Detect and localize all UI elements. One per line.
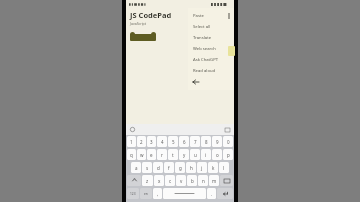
staticText: h xyxy=(190,165,193,171)
button[interactable]: e xyxy=(147,149,156,160)
button[interactable]: f xyxy=(164,162,174,173)
staticText: t xyxy=(172,152,174,158)
button[interactable]: c xyxy=(165,175,175,186)
staticText: 6 xyxy=(183,139,186,145)
button[interactable]: Select all xyxy=(188,21,234,32)
button[interactable]: 123 xyxy=(127,188,139,199)
button[interactable]: , xyxy=(153,188,162,199)
staticText: m xyxy=(212,178,217,184)
staticText: z xyxy=(146,178,149,184)
staticText: e xyxy=(150,152,153,158)
button[interactable]: w xyxy=(137,149,146,160)
staticText: g xyxy=(179,165,182,171)
staticText: a xyxy=(135,165,138,171)
button[interactable]: l xyxy=(219,162,229,173)
staticText: . xyxy=(211,191,213,197)
button[interactable]: Language xyxy=(140,188,152,199)
button[interactable]: Emoji xyxy=(129,126,136,133)
staticText: b xyxy=(191,178,194,184)
staticText: o xyxy=(216,152,219,158)
staticText: en xyxy=(144,192,148,196)
button[interactable]: d xyxy=(153,162,163,173)
button[interactable]: Keyboard settings xyxy=(224,126,231,133)
button[interactable]: 2 xyxy=(137,136,146,147)
button[interactable]: v xyxy=(176,175,186,186)
button[interactable]: 1 xyxy=(127,136,136,147)
button[interactable]: x xyxy=(154,175,164,186)
button[interactable]: a xyxy=(131,162,141,173)
staticText: l xyxy=(223,165,225,171)
button[interactable]: t xyxy=(168,149,178,160)
button[interactable]: s xyxy=(142,162,152,173)
staticText: u xyxy=(194,152,197,158)
staticText: y xyxy=(183,152,186,158)
button[interactable]: Space xyxy=(163,188,206,199)
button[interactable]: Selection handle xyxy=(228,46,235,56)
staticText: Ask ChatGPT xyxy=(193,57,219,63)
staticText: n xyxy=(202,178,205,184)
button[interactable]: h xyxy=(186,162,196,173)
button[interactable]: z xyxy=(142,175,153,186)
staticText: 9 xyxy=(216,139,219,145)
button[interactable]: 7 xyxy=(190,136,200,147)
staticText: 8 xyxy=(205,139,208,145)
staticText: Web search xyxy=(193,46,216,52)
button[interactable]: 0 xyxy=(223,136,233,147)
button[interactable]: 6 xyxy=(179,136,189,147)
button[interactable]: 9 xyxy=(212,136,222,147)
button[interactable]: 4 xyxy=(157,136,167,147)
staticText: 7 xyxy=(194,139,197,145)
button[interactable]: 8 xyxy=(201,136,211,147)
button[interactable]: Back xyxy=(188,76,234,88)
button[interactable]: q xyxy=(127,149,136,160)
staticText: JS CodePad xyxy=(130,10,172,20)
staticText: s xyxy=(146,165,149,171)
button[interactable]: j xyxy=(197,162,207,173)
staticText: 3 xyxy=(150,139,153,145)
button[interactable]: More options xyxy=(224,11,233,20)
button[interactable]: u xyxy=(190,149,200,160)
staticText: 4 xyxy=(161,139,164,145)
button[interactable]: b xyxy=(187,175,197,186)
button[interactable]: 5 xyxy=(168,136,178,147)
button[interactable]: Web search xyxy=(188,43,234,54)
staticText: w xyxy=(140,152,144,158)
staticText: 0 xyxy=(227,139,230,145)
button[interactable]: y xyxy=(179,149,189,160)
staticText: j xyxy=(201,165,203,171)
staticText: q xyxy=(130,152,133,158)
staticText: Read aloud xyxy=(193,68,216,74)
staticText: Translate xyxy=(193,35,212,41)
staticText: r xyxy=(161,152,163,158)
staticText: 1 xyxy=(130,139,133,145)
button[interactable]: r xyxy=(157,149,167,160)
button[interactable]: k xyxy=(208,162,218,173)
button[interactable]: g xyxy=(175,162,185,173)
button[interactable]: Translate xyxy=(188,32,234,43)
staticText: x xyxy=(158,178,161,184)
staticText: 2 xyxy=(140,139,143,145)
button[interactable]: 3 xyxy=(147,136,156,147)
staticText: Select all xyxy=(193,24,211,30)
staticText: c xyxy=(169,178,172,184)
staticText: f xyxy=(168,165,170,171)
button[interactable]: Ask ChatGPT xyxy=(188,54,234,65)
button[interactable]: Read aloud xyxy=(188,65,234,76)
staticText: JavaScript xyxy=(130,21,147,26)
staticText: , xyxy=(157,191,159,197)
button[interactable]: Enter xyxy=(217,188,233,199)
button[interactable]: Paste xyxy=(188,10,234,21)
staticText: p xyxy=(227,152,230,158)
staticText: Paste xyxy=(193,13,204,19)
staticText: 123 xyxy=(130,192,136,196)
button[interactable]: n xyxy=(198,175,208,186)
button[interactable]: . xyxy=(207,188,216,199)
button[interactable]: p xyxy=(223,149,233,160)
button[interactable]: m xyxy=(209,175,219,186)
staticText: k xyxy=(212,165,215,171)
button[interactable]: i xyxy=(201,149,211,160)
staticText: 5 xyxy=(172,139,175,145)
button[interactable]: Backspace xyxy=(220,175,233,186)
button[interactable]: Shift xyxy=(127,175,141,186)
button[interactable]: o xyxy=(212,149,222,160)
